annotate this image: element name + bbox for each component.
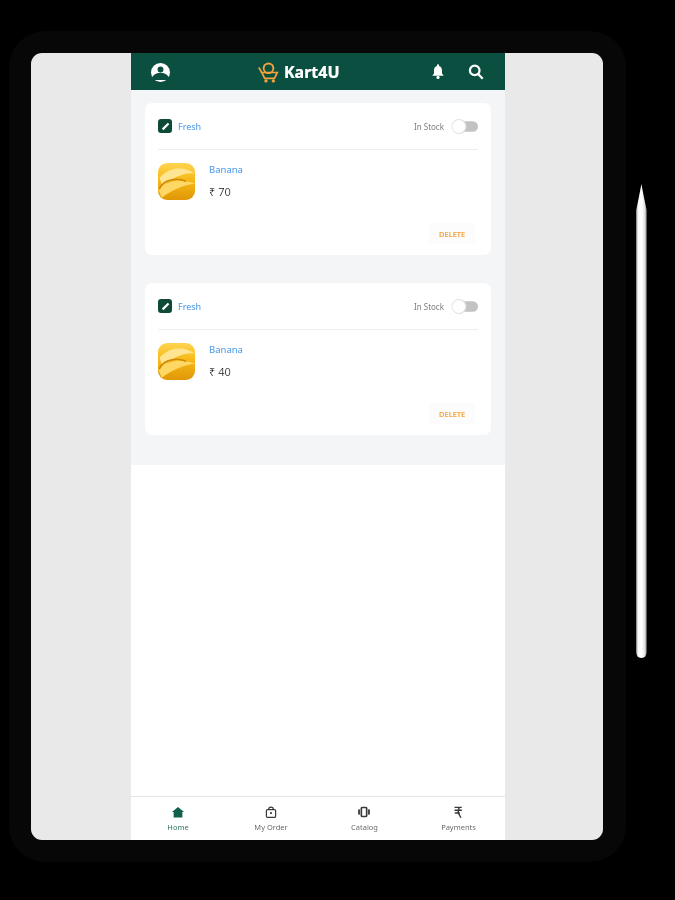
- staticText: ₹ 40: [209, 364, 231, 379]
- staticText: ₹ 70: [209, 184, 231, 199]
- staticText: DELETE: [439, 229, 466, 239]
- button[interactable]: Catalog: [317, 797, 411, 840]
- staticText: Kart4U: [284, 61, 340, 83]
- staticText: Banana: [209, 343, 243, 356]
- staticText: My Order: [254, 822, 288, 832]
- button[interactable]: Edit: [158, 299, 172, 313]
- staticText: Banana: [209, 163, 243, 176]
- button[interactable]: In Stock toggle: [451, 299, 478, 314]
- staticText: Catalog: [351, 822, 378, 832]
- staticText: Fresh: [178, 300, 202, 312]
- button[interactable]: Edit: [145, 283, 491, 435]
- staticText: In Stock: [414, 121, 444, 132]
- button[interactable]: DELETE: [429, 223, 475, 244]
- staticText: Home: [167, 822, 189, 832]
- button[interactable]: In Stock toggle: [451, 119, 478, 134]
- staticText: In Stock: [414, 301, 444, 312]
- button[interactable]: My Order: [224, 797, 317, 840]
- staticText: Payments: [441, 822, 476, 832]
- staticText: DELETE: [439, 409, 466, 419]
- button[interactable]: Edit: [145, 103, 491, 255]
- button[interactable]: Home: [131, 797, 224, 840]
- button[interactable]: Search: [464, 60, 488, 84]
- button[interactable]: Profile: [148, 60, 172, 84]
- button[interactable]: Payments: [411, 797, 505, 840]
- button[interactable]: Edit: [158, 119, 172, 133]
- staticText: Fresh: [178, 120, 202, 132]
- button[interactable]: DELETE: [429, 403, 475, 424]
- button[interactable]: Notifications: [426, 60, 450, 84]
